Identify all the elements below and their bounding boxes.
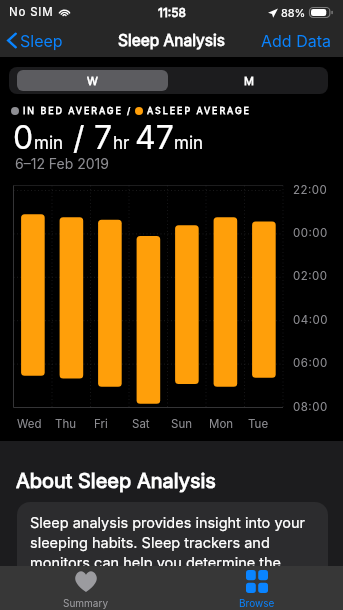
staticText: 11:58: [158, 5, 186, 20]
staticText: 22:00: [293, 183, 328, 197]
staticText: hr: [113, 133, 130, 154]
button[interactable]: M: [170, 67, 328, 94]
staticText: Sleep analysis provides insight into you…: [30, 514, 316, 572]
staticText: 47: [135, 118, 174, 157]
staticText: min: [174, 133, 204, 154]
staticText: Summary: [63, 597, 109, 609]
staticText: /: [64, 118, 94, 157]
staticText: 00:00: [293, 226, 328, 240]
staticText: 0: [13, 118, 34, 157]
staticText: min: [34, 133, 64, 154]
staticText: M: [244, 74, 254, 87]
staticText: No SIM: [9, 5, 54, 19]
staticText: IN BED AVERAGE /: [23, 105, 133, 116]
button[interactable]: Add Data: [251, 25, 343, 56]
staticText: ASLEEP AVERAGE: [147, 105, 251, 116]
staticText: 02:00: [293, 269, 328, 283]
staticText: Wed: [17, 417, 42, 431]
button[interactable]: W: [17, 70, 168, 91]
staticText: Fri: [94, 417, 108, 431]
other: Summary: [74, 571, 98, 592]
other: Browse: [246, 570, 268, 593]
staticText: Mon: [209, 417, 234, 431]
button[interactable]: Sleep: [0, 27, 71, 54]
button[interactable]: Summary: [0, 566, 171, 610]
staticText: Thu: [55, 417, 77, 431]
staticText: 08:00: [293, 400, 328, 414]
button[interactable]: Browse: [171, 566, 343, 610]
staticText: About Sleep Analysis: [16, 469, 216, 493]
staticText: 06:00: [293, 356, 328, 370]
staticText: 88%: [281, 6, 306, 19]
staticText: Tue: [248, 417, 269, 431]
staticText: W: [87, 74, 98, 87]
staticText: 6–12 Feb 2019: [15, 155, 109, 172]
staticText: Sun: [171, 417, 192, 431]
staticText: 04:00: [293, 313, 329, 327]
staticText: Sat: [132, 417, 150, 431]
staticText: Browse: [239, 597, 275, 609]
staticText: Sleep: [20, 31, 63, 50]
staticText: Sleep Analysis: [118, 31, 225, 50]
staticText: 7: [94, 118, 113, 157]
